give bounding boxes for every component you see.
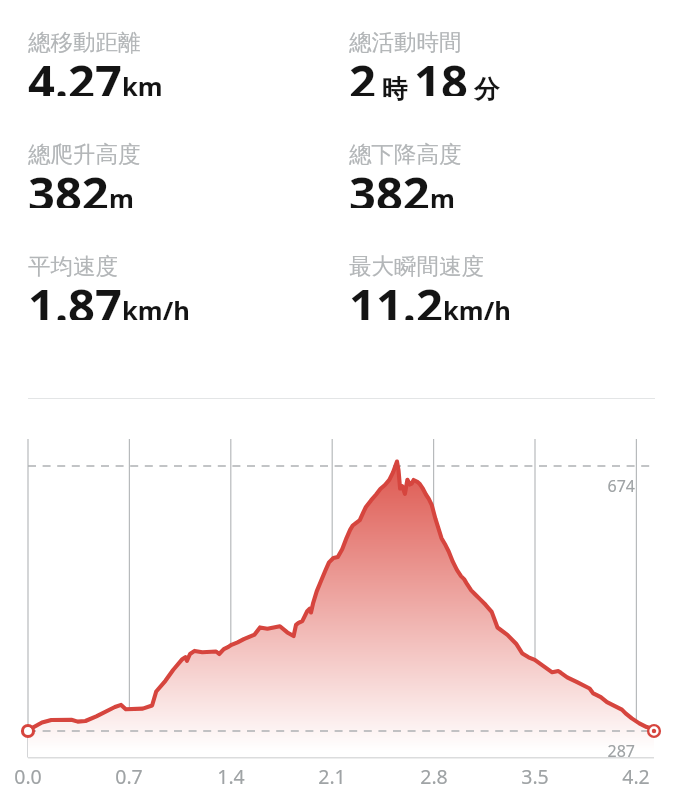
staticText: 0.0 xyxy=(0,763,68,790)
staticText: 4.27 xyxy=(28,49,122,96)
staticText: 382 xyxy=(28,161,109,208)
staticText: 2.8 xyxy=(394,763,474,790)
staticText: m xyxy=(430,181,455,209)
staticText: 287 xyxy=(500,740,635,762)
button[interactable]: 平均速度 xyxy=(28,252,190,299)
staticText: 分 xyxy=(474,73,500,101)
staticText: km/h xyxy=(122,293,190,321)
staticText: km/h xyxy=(443,293,511,321)
button[interactable]: 總活動時間 xyxy=(349,28,500,75)
staticText: 3.5 xyxy=(495,763,575,790)
staticText: 674 xyxy=(500,475,635,497)
staticText: 382 xyxy=(349,161,430,208)
staticText: 總爬升高度 xyxy=(28,140,141,168)
button[interactable]: 總下降高度 xyxy=(349,140,462,187)
button[interactable]: 總移動距離 xyxy=(28,28,163,75)
staticText: 總活動時間 xyxy=(349,28,462,56)
staticText: 時 xyxy=(382,73,408,101)
staticText: 總移動距離 xyxy=(28,28,141,56)
button[interactable]: 最大瞬間速度 xyxy=(349,252,511,299)
staticText: 4.2 xyxy=(596,763,676,790)
staticText: 平均速度 xyxy=(28,252,118,280)
staticText: 18 xyxy=(414,49,468,96)
button[interactable]: 總爬升高度 xyxy=(28,140,141,187)
staticText: 1.4 xyxy=(191,763,271,790)
staticText: 11.2 xyxy=(349,273,443,320)
staticText: km xyxy=(122,69,163,97)
staticText: 0.7 xyxy=(89,763,169,790)
staticText: m xyxy=(109,181,134,209)
staticText: 最大瞬間速度 xyxy=(349,252,484,280)
staticText: 2 xyxy=(349,49,376,96)
staticText: 總下降高度 xyxy=(349,140,462,168)
staticText: 1.87 xyxy=(28,273,122,320)
staticText: 2.1 xyxy=(292,763,372,790)
